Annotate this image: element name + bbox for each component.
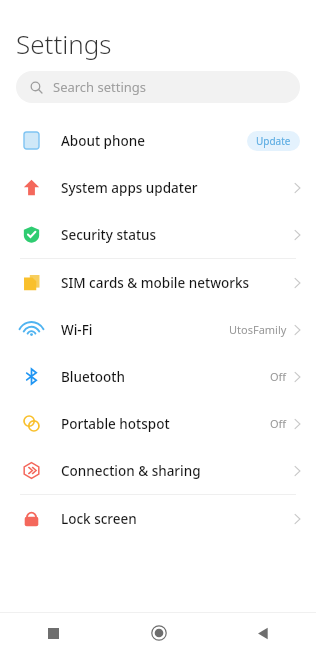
button[interactable]: Security status <box>0 211 316 258</box>
staticText: Portable hotspot <box>61 415 170 433</box>
button[interactable]: Recent apps <box>0 613 106 653</box>
staticText: Security status <box>61 226 157 244</box>
button[interactable]: Lock screen <box>0 495 316 542</box>
staticText: Lock screen <box>61 510 137 528</box>
staticText: Off <box>270 416 287 431</box>
button[interactable]: About phone <box>0 117 316 164</box>
button[interactable]: Back <box>211 613 316 653</box>
staticText: Off <box>270 369 287 384</box>
button[interactable]: Portable hotspot <box>0 400 316 447</box>
staticText: About phone <box>61 132 145 150</box>
button[interactable]: Bluetooth <box>0 353 316 400</box>
staticText: Wi-Fi <box>61 321 93 339</box>
button[interactable]: Connection & sharing <box>0 447 316 494</box>
staticText: Connection & sharing <box>61 462 201 480</box>
staticText: Bluetooth <box>61 368 125 386</box>
button[interactable]: Wi-Fi <box>0 306 316 353</box>
button[interactable]: Home <box>106 613 211 653</box>
staticText: SIM cards & mobile networks <box>61 274 250 292</box>
staticText: Settings <box>16 26 112 61</box>
button[interactable]: Search settings <box>16 71 300 103</box>
staticText: Update <box>256 134 291 148</box>
button[interactable]: SIM cards & mobile networks <box>0 259 316 306</box>
staticText: Search settings <box>53 78 147 96</box>
staticText: System apps updater <box>61 179 198 197</box>
button[interactable]: System apps updater <box>0 164 316 211</box>
staticText: UtosFamily <box>229 322 287 337</box>
